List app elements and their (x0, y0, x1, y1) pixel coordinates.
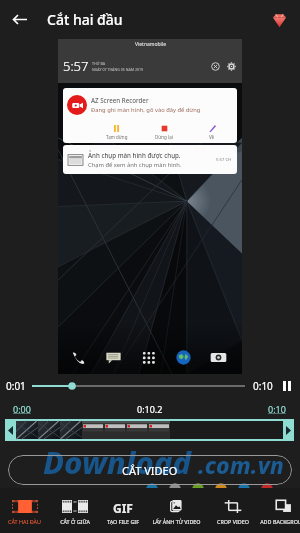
staticText: 5:57 CH (216, 157, 232, 163)
staticText: Chạm để xem ảnh chụp màn hình. (88, 161, 182, 169)
staticText: 0:00 (13, 403, 31, 415)
staticText: NGÀY 07 THÁNG 05 NĂM 2019 (92, 67, 144, 72)
staticText: Cắt hai đầu (47, 10, 123, 29)
staticText: CẮT VIDEO (122, 463, 178, 478)
staticText: 0:10 (253, 379, 273, 393)
staticText: LẤY ẢNH TỪ VIDEO (152, 518, 201, 525)
button[interactable]: Vẽ (188, 121, 236, 143)
button[interactable]: Trim start handle (5, 419, 16, 441)
staticText: .com.vn (198, 449, 284, 480)
button[interactable]: CROP VIDEO (206, 488, 260, 533)
staticText: Vẽ (209, 134, 215, 140)
staticText: 0:01 (6, 379, 26, 393)
button[interactable]: Pause (280, 379, 294, 393)
staticText: CẮT Ở GIỮA (60, 518, 90, 525)
button[interactable]: CẮT VIDEO (8, 455, 292, 485)
staticText: Tạm dừng (106, 134, 128, 140)
button[interactable]: GIF (100, 488, 146, 533)
staticText: CROP VIDEO (217, 518, 249, 525)
staticText: Dừng lại (155, 134, 173, 140)
button[interactable]: Premium (262, 3, 296, 37)
staticText: Vietnamobile (135, 41, 166, 48)
staticText: 0:10.2 (137, 403, 163, 415)
button[interactable]: Tạm dừng (93, 121, 140, 143)
button[interactable]: Trim end handle (283, 419, 294, 441)
staticText: GIF (113, 500, 133, 513)
button[interactable]: LẤY ẢNH TỪ VIDEO (146, 488, 206, 533)
staticText: THỨ BA (92, 61, 106, 66)
staticText: 0:10 (268, 403, 286, 415)
staticText: 5:57 (63, 57, 89, 75)
staticText: AZ Screen Recorder (91, 96, 149, 104)
staticText: Download (43, 441, 192, 483)
button[interactable]: ADD BACKGROUND (260, 488, 300, 533)
staticText: TẠO FILE GIF (107, 518, 139, 525)
staticText: Ảnh chụp màn hình được chụp. (88, 151, 181, 159)
button[interactable]: Back (0, 0, 39, 39)
staticText: Đang ghi màn hình, gõ vào đây để dừng (91, 106, 201, 114)
button[interactable]: Dừng lại (140, 121, 188, 143)
button[interactable]: CẮT HAI ĐẦU (0, 488, 49, 533)
staticText: CẮT HAI ĐẦU (8, 518, 41, 525)
staticText: ADD BACKGROUND (260, 518, 300, 525)
button[interactable]: CẮT Ở GIỮA (49, 488, 100, 533)
